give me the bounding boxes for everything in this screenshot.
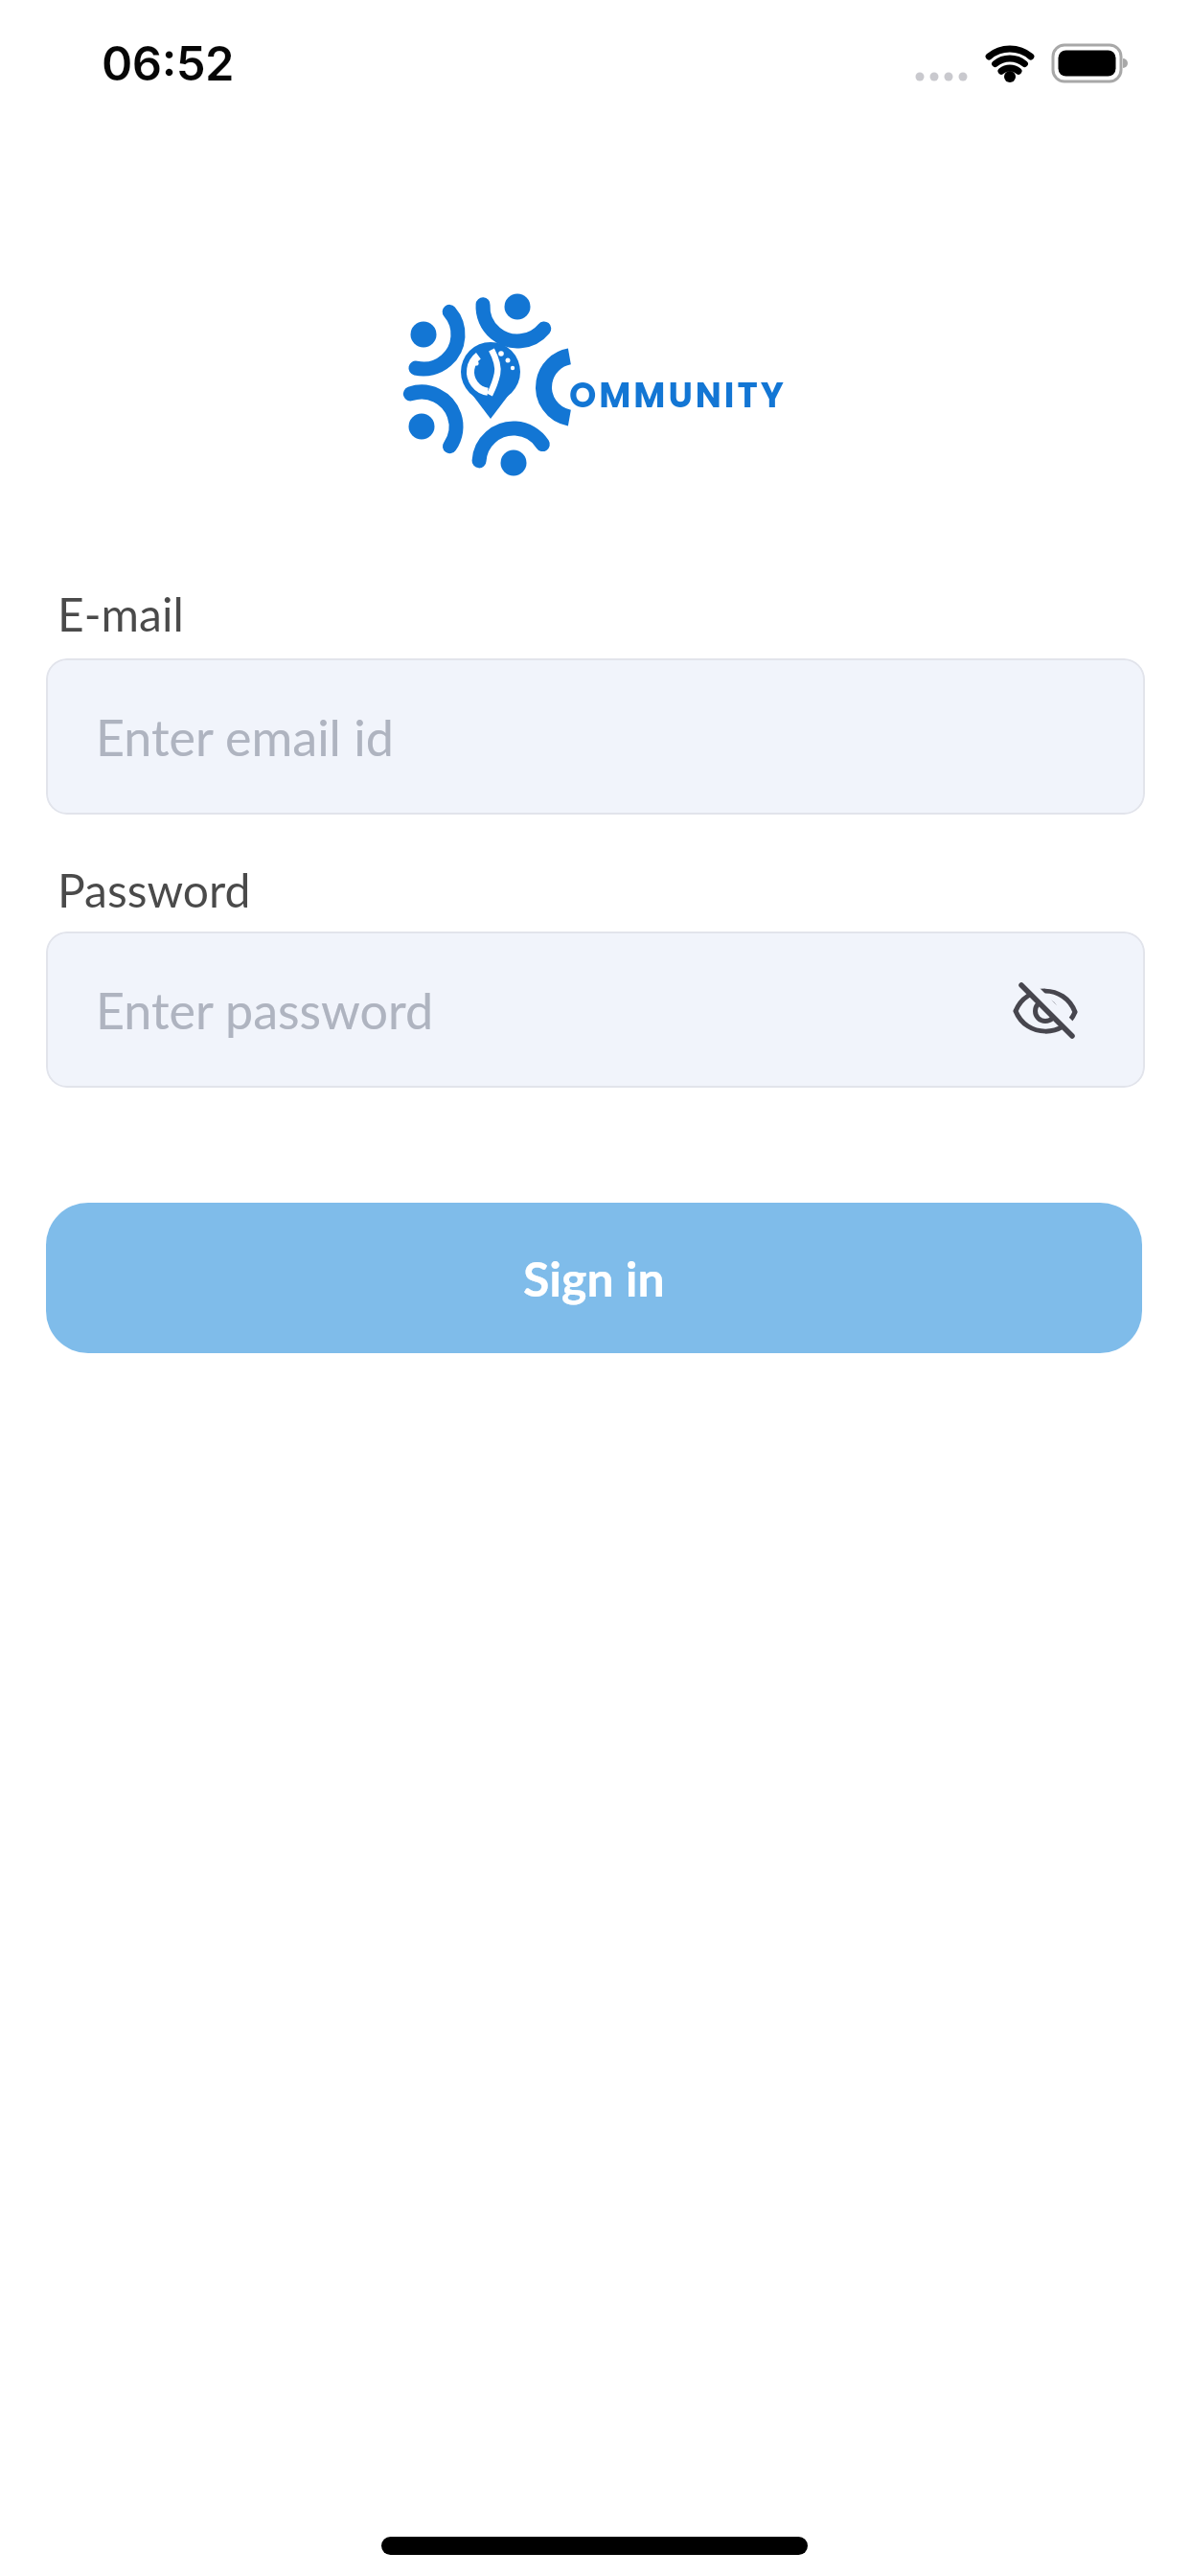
button[interactable] [1017, 967, 1103, 1053]
staticText: Password [57, 862, 251, 918]
staticText: Sign in [523, 1250, 665, 1307]
button[interactable]: Enter email id [46, 658, 1145, 815]
staticText: Enter password [96, 980, 434, 1040]
staticText: 06:52 [102, 35, 235, 92]
button[interactable]: Enter password [46, 931, 1145, 1088]
staticText: E-mail [57, 586, 184, 642]
staticText: OMMUNITY [569, 371, 787, 419]
button[interactable]: Sign in [46, 1203, 1142, 1353]
staticText: Enter email id [96, 707, 394, 767]
